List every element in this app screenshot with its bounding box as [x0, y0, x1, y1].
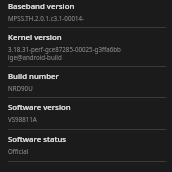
- button[interactable]: Software status: [0, 130, 172, 161]
- staticText: VS98811A: [8, 115, 37, 123]
- button[interactable]: Baseband version: [0, 0, 172, 27]
- staticText: Build number: [8, 71, 59, 82]
- staticText: Kernel version: [8, 32, 62, 43]
- staticText: MPSS.TH.2.0.1.c3.1-00014-M8996FAAAANAZM-…: [8, 14, 164, 22]
- button[interactable]: Kernel version: [0, 28, 172, 66]
- button[interactable]: Software version: [0, 98, 172, 129]
- staticText: Official: [8, 147, 29, 155]
- staticText: lge@android-build: [8, 53, 62, 61]
- staticText: NRD90U: [8, 84, 33, 92]
- staticText: 3.18.31-perf-gce87285-00025-g3ffa6bb: [8, 45, 121, 53]
- staticText: Baseband version: [8, 1, 75, 12]
- staticText: Software version: [8, 102, 71, 113]
- button[interactable]: Build number: [0, 67, 172, 97]
- staticText: Software status: [8, 134, 67, 145]
